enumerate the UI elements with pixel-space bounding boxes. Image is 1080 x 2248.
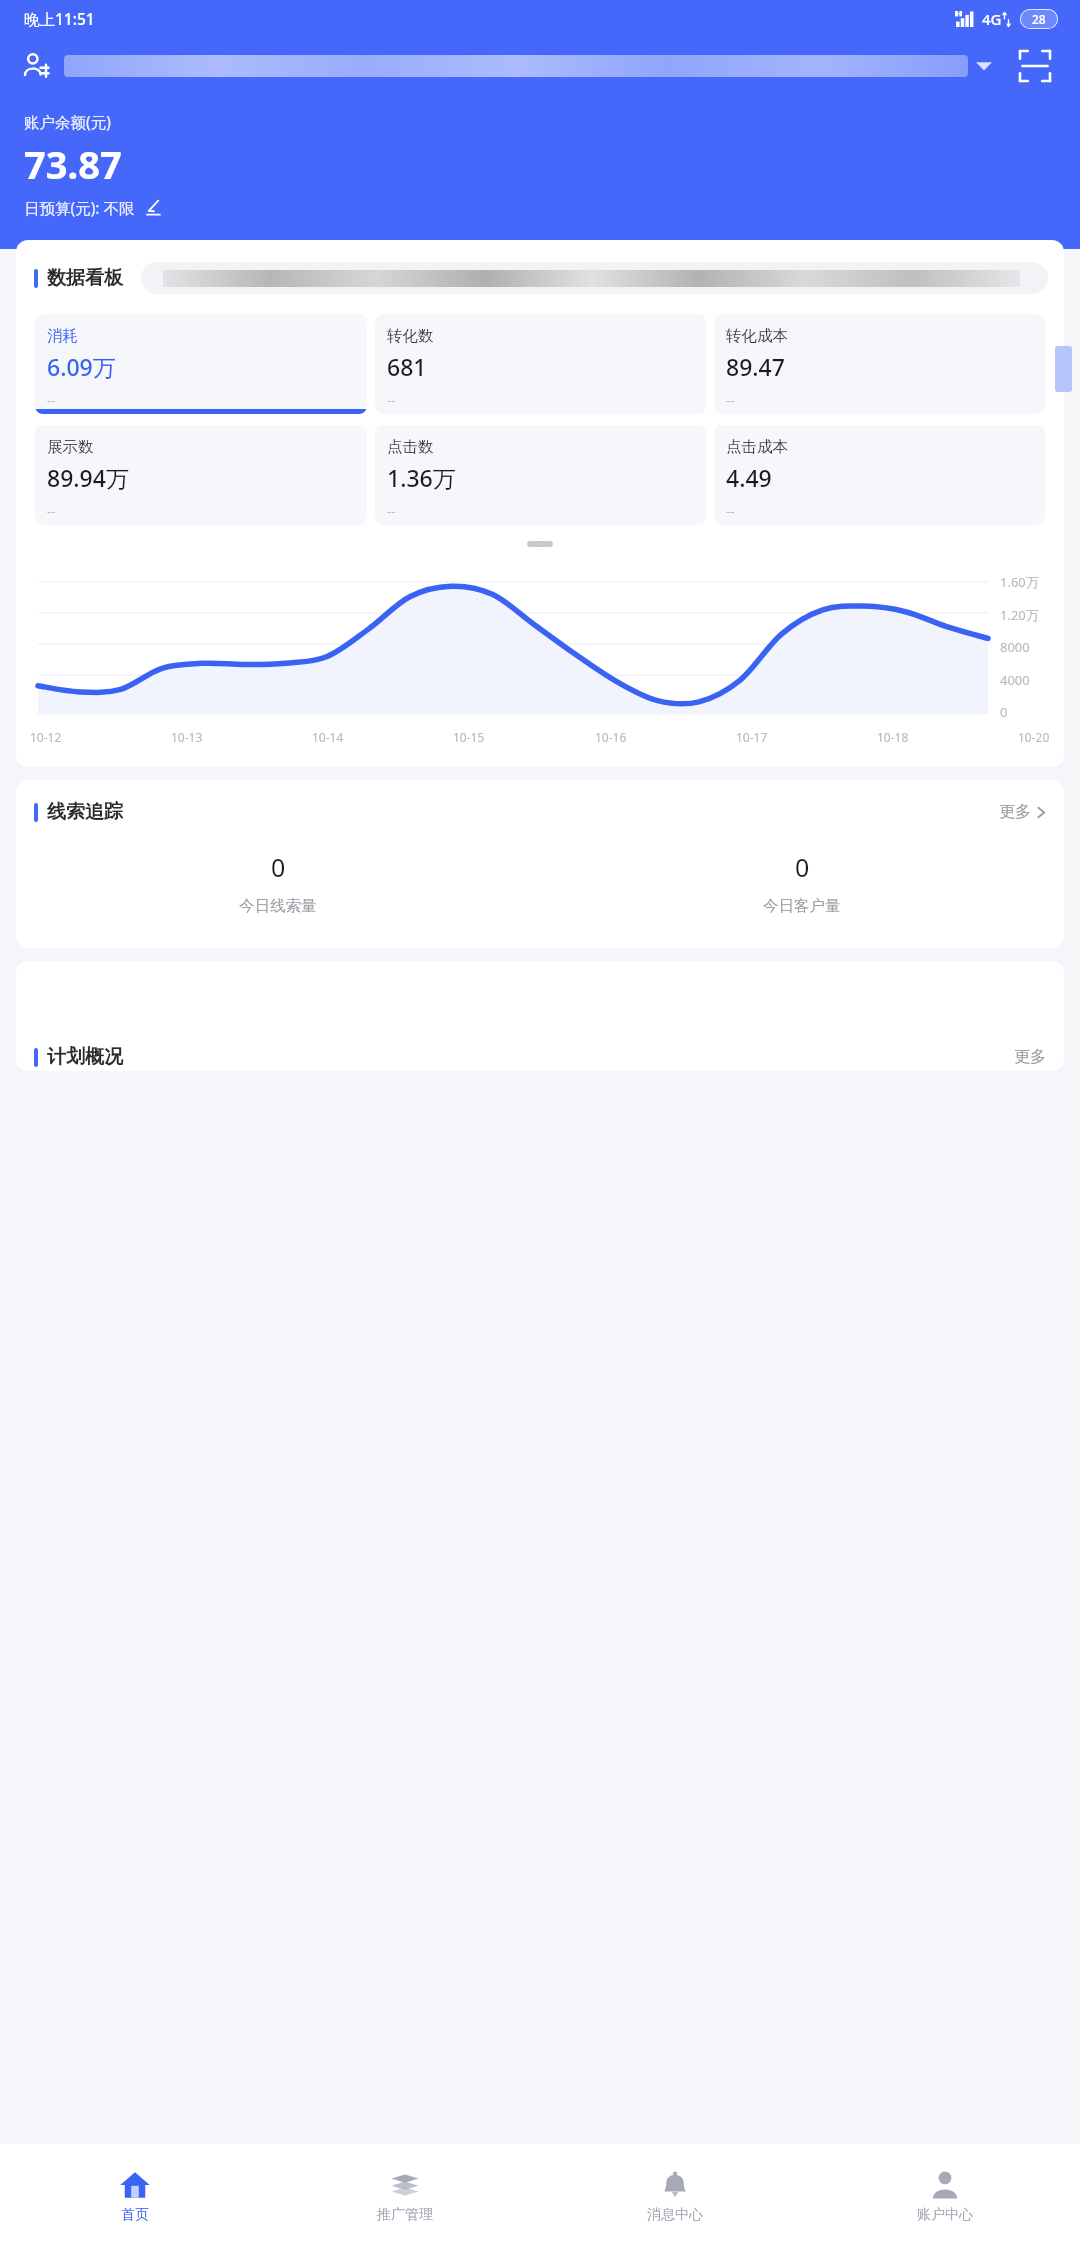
staticText: 日预算(元): 不限 <box>24 197 135 218</box>
staticText: 0 <box>1000 703 1008 721</box>
button[interactable]: 0 <box>16 850 540 916</box>
staticText: 数据看板 <box>47 266 123 290</box>
staticText: -- <box>47 391 56 409</box>
staticText: 681 <box>387 351 427 382</box>
button[interactable]: 转化成本 <box>714 314 1045 414</box>
staticText: 10-12 <box>30 729 62 745</box>
staticText: 89.94万 <box>47 462 129 493</box>
staticText: 10-15 <box>453 729 485 745</box>
staticText: -- <box>726 391 735 409</box>
staticText: 4G <box>982 9 1002 29</box>
staticText: 转化数 <box>387 326 434 346</box>
button[interactable]: 展示数 <box>35 425 367 525</box>
button[interactable]: 扫一扫 <box>1012 43 1058 89</box>
button[interactable]: 更多 <box>999 802 1046 822</box>
staticText: 首页 <box>121 2206 149 2224</box>
staticText: 10-13 <box>171 729 203 745</box>
staticText: 晚上11:51 <box>24 8 95 29</box>
button[interactable]: 计划概况 <box>16 961 1064 1071</box>
staticText: 消耗 <box>47 326 78 346</box>
staticText: 8000 <box>1000 638 1030 656</box>
button[interactable] <box>141 262 1048 294</box>
button[interactable]: 消耗 <box>35 314 367 414</box>
staticText: 展示数 <box>47 437 94 457</box>
staticText: 推广管理 <box>377 2206 433 2224</box>
staticText: 10-16 <box>595 729 627 745</box>
staticText: 账户中心 <box>917 2206 973 2224</box>
staticText: -- <box>47 502 56 520</box>
button[interactable]: 首页 <box>0 2144 270 2248</box>
button[interactable]: 点击成本 <box>714 425 1045 525</box>
staticText: 1.60万 <box>1000 573 1039 591</box>
staticText: 0 <box>271 850 286 884</box>
button[interactable] <box>22 37 992 95</box>
staticText: 10-14 <box>312 729 344 745</box>
button[interactable]: 推广管理 <box>270 2144 540 2248</box>
staticText: 28 <box>1032 11 1046 27</box>
staticText: 73.87 <box>24 138 122 190</box>
staticText: 点击成本 <box>726 437 788 457</box>
button[interactable]: 日预算(元): 不限 <box>24 197 162 218</box>
button[interactable]: 转化数 <box>375 314 706 414</box>
staticText: 10-17 <box>736 729 768 745</box>
staticText: 更多 <box>999 802 1031 822</box>
staticText: 89.47 <box>726 351 785 382</box>
button[interactable]: 点击数 <box>375 425 706 525</box>
staticText: 1.36万 <box>387 462 456 493</box>
staticText: 转化成本 <box>726 326 788 346</box>
staticText: 消息中心 <box>647 2206 703 2224</box>
staticText: 6.09万 <box>47 351 116 382</box>
staticText: 点击数 <box>387 437 434 457</box>
button[interactable]: 账户中心 <box>810 2144 1080 2248</box>
staticText: 今日线索量 <box>239 896 317 916</box>
staticText: 4000 <box>1000 671 1030 689</box>
staticText: 计划概况 <box>47 1045 123 1069</box>
staticText: 线索追踪 <box>47 800 123 824</box>
staticText: 0 <box>795 850 810 884</box>
staticText: -- <box>387 391 396 409</box>
button[interactable]: 0 <box>540 850 1064 916</box>
staticText: 4.49 <box>726 462 772 493</box>
staticText: -- <box>387 502 396 520</box>
staticText: 更多 <box>1014 1047 1046 1067</box>
staticText: 10-18 <box>877 729 909 745</box>
staticText: 1.20万 <box>1000 606 1039 624</box>
staticText: 账户余额(元) <box>24 111 111 132</box>
button[interactable]: 消息中心 <box>540 2144 810 2248</box>
staticText: -- <box>726 502 735 520</box>
staticText: 10-20 <box>1018 729 1050 745</box>
staticText: 今日客户量 <box>763 896 841 916</box>
